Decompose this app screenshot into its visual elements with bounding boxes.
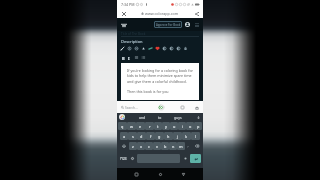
button[interactable]: Approve For Book <box>154 21 182 28</box>
button[interactable]: Home <box>156 170 165 179</box>
button[interactable]: x <box>137 142 145 150</box>
staticText: q <box>121 124 124 129</box>
staticText: u <box>173 124 176 129</box>
button[interactable]: a <box>120 132 128 140</box>
button[interactable]: Profile <box>184 21 191 28</box>
staticText: to <box>158 115 162 120</box>
staticText: g <box>158 134 161 139</box>
button[interactable]: Italic <box>126 55 132 61</box>
staticText: If you're looking for a coloring book fo… <box>127 68 196 84</box>
staticText: k <box>185 134 188 139</box>
button[interactable]: h <box>164 132 173 140</box>
staticText: Title of The Book <box>121 32 146 36</box>
button[interactable]: t <box>154 122 162 130</box>
button[interactable]: w <box>127 122 136 130</box>
button[interactable]: i <box>178 122 186 130</box>
staticText: y <box>165 124 167 129</box>
staticText: d <box>140 134 143 139</box>
staticText: r <box>149 124 151 129</box>
button[interactable]: q <box>118 122 127 130</box>
staticText: z <box>132 144 134 149</box>
staticText: n <box>172 144 175 149</box>
button[interactable]: More options <box>193 21 200 28</box>
staticText: I <box>128 56 130 61</box>
button[interactable]: z <box>129 142 137 150</box>
staticText: B <box>122 56 125 61</box>
staticText: c <box>148 144 150 149</box>
button[interactable]: y <box>162 122 170 130</box>
button[interactable]: o <box>186 122 194 130</box>
staticText: m <box>179 144 183 149</box>
button[interactable]: Enter <box>190 154 201 163</box>
staticText: www.colorapp.com <box>145 11 179 16</box>
button[interactable]: Format <box>140 54 147 61</box>
button[interactable]: g <box>155 132 164 140</box>
button[interactable]: Format <box>133 45 140 52</box>
button[interactable]: Home <box>193 104 200 111</box>
button[interactable]: ?123 <box>119 154 127 163</box>
button[interactable]: p <box>194 122 202 130</box>
staticText: l <box>195 134 196 139</box>
button[interactable]: e <box>136 122 145 130</box>
button[interactable]: comma <box>185 141 191 151</box>
button[interactable]: Period <box>182 154 188 163</box>
button[interactable]: r <box>145 122 154 130</box>
button[interactable]: Format <box>133 54 140 61</box>
staticText: o <box>189 124 192 129</box>
button[interactable]: c <box>145 142 153 150</box>
button[interactable]: Recents <box>132 170 141 179</box>
button[interactable]: Voice input <box>196 115 201 120</box>
button[interactable]: j <box>173 132 182 140</box>
button[interactable]: d <box>137 132 146 140</box>
button[interactable]: k <box>182 132 191 140</box>
button[interactable]: Tabs <box>179 104 186 111</box>
button[interactable]: Format <box>168 45 175 52</box>
button[interactable]: Google <box>157 103 165 111</box>
staticText: t <box>157 124 159 129</box>
button[interactable]: Share <box>193 10 200 17</box>
staticText: Then this book is for you <box>127 89 169 94</box>
staticText: f <box>150 134 152 139</box>
button[interactable]: Emoji <box>129 154 135 163</box>
button[interactable]: shift <box>118 141 129 151</box>
button[interactable]: b <box>161 142 169 150</box>
staticText: x <box>140 144 143 149</box>
button[interactable]: Close <box>120 10 127 17</box>
button[interactable]: Menu <box>120 21 128 29</box>
staticText: and <box>139 115 146 120</box>
button[interactable]: del <box>191 141 202 151</box>
button[interactable]: Google Assistant <box>119 114 125 120</box>
button[interactable]: Format <box>182 45 189 52</box>
staticText: ?123 <box>120 157 127 161</box>
button[interactable]: l <box>191 132 200 140</box>
staticText: b <box>164 144 167 149</box>
button[interactable]: Format <box>154 45 161 52</box>
staticText: j <box>177 134 178 139</box>
button[interactable]: Format <box>119 45 126 52</box>
button[interactable]: Format <box>147 45 154 52</box>
staticText: Search... <box>125 106 138 110</box>
button[interactable]: Format <box>140 45 147 52</box>
button[interactable]: s <box>128 132 137 140</box>
staticText: a <box>123 134 126 139</box>
staticText: 7:34 PM <box>121 2 135 7</box>
button[interactable]: Back <box>179 170 188 179</box>
button[interactable]: n <box>169 142 177 150</box>
button[interactable]: u <box>170 122 178 130</box>
staticText: s <box>132 134 134 139</box>
button[interactable]: Bold <box>120 55 126 61</box>
staticText: p <box>197 124 200 129</box>
staticText: i <box>182 124 183 129</box>
button[interactable]: Format <box>161 45 168 52</box>
staticText: e <box>139 124 142 129</box>
staticText: v <box>156 144 158 149</box>
button[interactable]: m <box>177 142 185 150</box>
button[interactable]: Format <box>126 45 133 52</box>
button[interactable]: f <box>146 132 155 140</box>
staticText: w <box>130 124 133 129</box>
button[interactable]: v <box>153 142 161 150</box>
button[interactable]: Search... <box>121 104 147 111</box>
staticText: h <box>167 134 170 139</box>
button[interactable]: Format <box>175 45 182 52</box>
